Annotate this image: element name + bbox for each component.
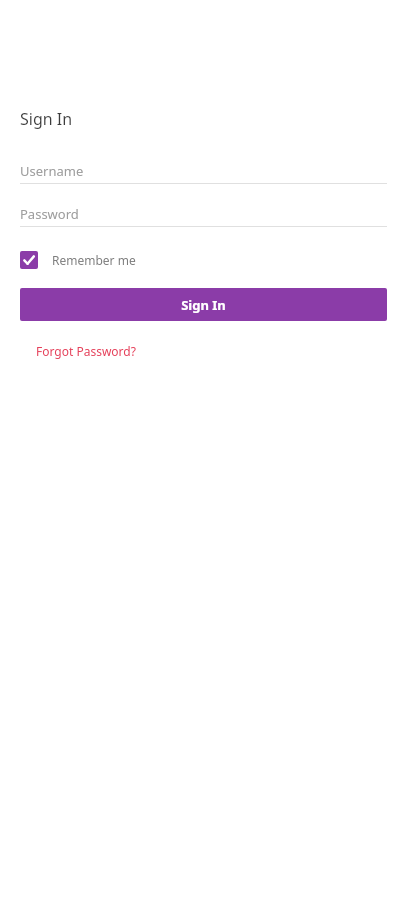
staticText: Sign In <box>20 108 73 130</box>
staticText: Username <box>20 162 84 180</box>
button[interactable]: Username <box>20 161 387 184</box>
button[interactable]: Remember me checkbox, checked <box>20 251 38 269</box>
button[interactable]: Remember me checkbox, checked <box>20 249 136 271</box>
button[interactable]: Sign In <box>20 288 387 321</box>
staticText: Password <box>20 205 79 223</box>
staticText: Sign In <box>181 296 226 314</box>
button[interactable]: Forgot Password? <box>36 343 136 359</box>
staticText: Forgot Password? <box>36 343 136 359</box>
button[interactable]: Password <box>20 204 387 227</box>
staticText: Remember me <box>52 252 136 268</box>
